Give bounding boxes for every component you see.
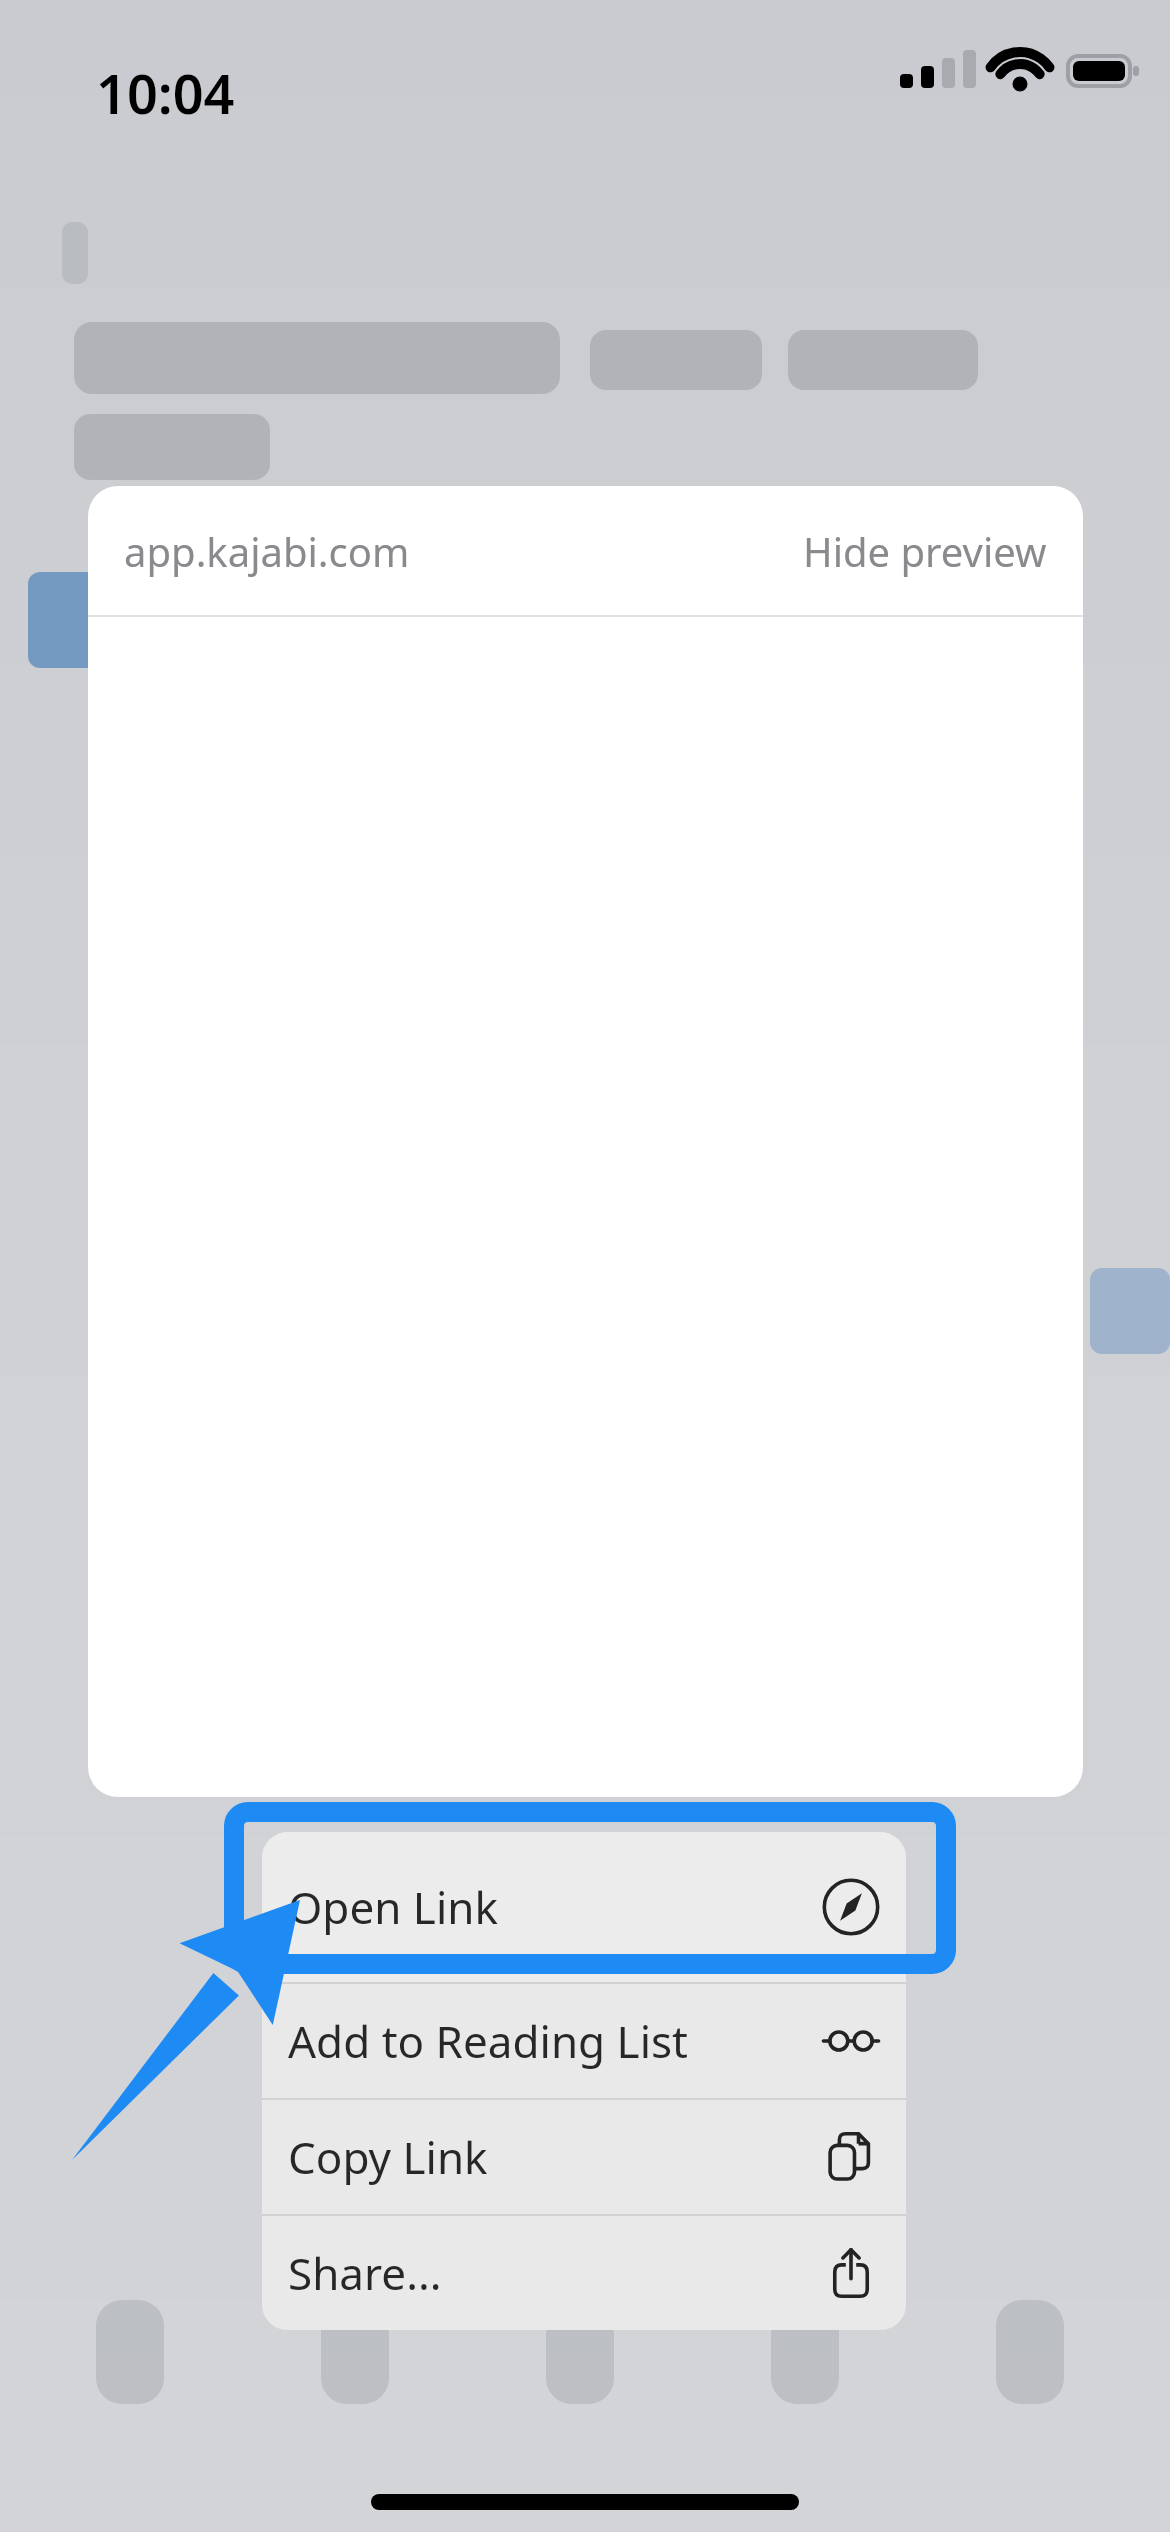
staticText: app.kajabi.com (124, 524, 410, 578)
button[interactable]: Copy Link (262, 2100, 906, 2214)
button[interactable]: Share... (262, 2216, 906, 2330)
staticText: Add to Reading List (288, 2011, 688, 2071)
button[interactable]: Hide preview (803, 524, 1047, 578)
staticText: Share... (288, 2243, 442, 2303)
staticText: Copy Link (288, 2127, 488, 2187)
staticText: Open Link (288, 1877, 498, 1937)
button[interactable]: app.kajabi.com (88, 486, 1083, 615)
button[interactable]: Add to Reading List (262, 1984, 906, 2098)
button[interactable]: Open Link (262, 1832, 906, 1982)
staticText: 10:04 (96, 56, 235, 130)
